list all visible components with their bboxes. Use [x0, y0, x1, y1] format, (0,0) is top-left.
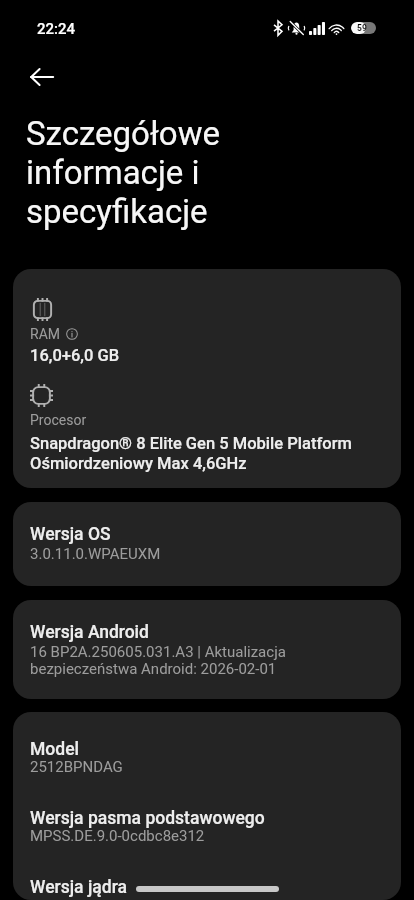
staticText: Wersja jądra	[30, 877, 128, 897]
button[interactable]: Wersja pasma podstawowego	[30, 808, 385, 845]
staticText: 2512BPNDAG	[30, 759, 123, 776]
staticText: specyfikacje	[26, 193, 208, 232]
staticText: Wersja pasma podstawowego	[30, 808, 265, 828]
button[interactable]: Back	[18, 53, 66, 101]
staticText: 16 BP2A.250605.031.A3 | Aktualizacja	[30, 644, 286, 661]
staticText: Wersja OS	[30, 524, 111, 544]
staticText: Ośmiordzeniowy Max 4,6GHz	[30, 453, 247, 473]
staticText: bezpieczeństwa Android: 2026-02-01	[30, 661, 277, 678]
staticText: RAM	[30, 326, 60, 342]
staticText: 16,0+6,0 GB	[30, 345, 120, 365]
staticText: Szczegółowe	[26, 115, 220, 154]
staticText: 3.0.11.0.WPAEUXM	[30, 546, 161, 563]
button[interactable]: Wersja Android	[13, 600, 401, 699]
staticText: Snapdragon® 8 Elite Gen 5 Mobile Platfor…	[30, 433, 352, 453]
staticText: MPSS.DE.9.0-0cdbc8e312	[30, 828, 205, 845]
staticText: 22:24	[37, 20, 76, 38]
button[interactable]: Wersja jądra	[30, 877, 385, 897]
staticText: 59	[357, 23, 367, 33]
staticText: Wersja Android	[30, 622, 149, 642]
button[interactable]: Model	[30, 739, 385, 776]
staticText: Model	[30, 739, 80, 759]
staticText: Procesor	[30, 412, 87, 428]
staticText: informacje i	[26, 154, 200, 193]
button[interactable]: Wersja OS	[13, 502, 401, 586]
